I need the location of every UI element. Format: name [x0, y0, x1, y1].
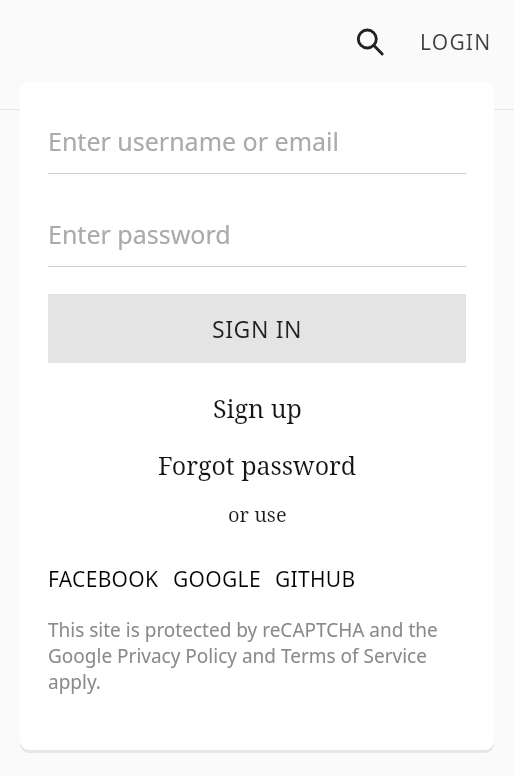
- staticText: Forgot password: [158, 448, 357, 482]
- staticText: FACEBOOK: [48, 565, 159, 594]
- button[interactable]: Enter password: [48, 213, 466, 267]
- staticText: This site is protected by reCAPTCHA and …: [48, 617, 466, 695]
- button[interactable]: FACEBOOK: [48, 557, 159, 602]
- staticText: or use: [228, 501, 287, 528]
- button[interactable]: SIGN IN: [48, 294, 466, 363]
- button[interactable]: LOGIN: [398, 16, 514, 69]
- staticText: Enter password: [48, 217, 231, 251]
- staticText: Sign up: [213, 391, 302, 425]
- staticText: Enter username or email: [48, 124, 339, 158]
- button[interactable]: GITHUB: [275, 557, 356, 602]
- button[interactable]: Sign up: [203, 385, 312, 431]
- button[interactable]: Search: [342, 14, 398, 70]
- staticText: SIGN IN: [212, 313, 303, 344]
- staticText: GOOGLE: [173, 565, 261, 594]
- button[interactable]: Enter username or email: [48, 120, 466, 174]
- staticText: GITHUB: [275, 565, 356, 594]
- staticText: LOGIN: [420, 28, 492, 57]
- button[interactable]: GOOGLE: [173, 557, 261, 602]
- button[interactable]: Forgot password: [148, 442, 367, 488]
